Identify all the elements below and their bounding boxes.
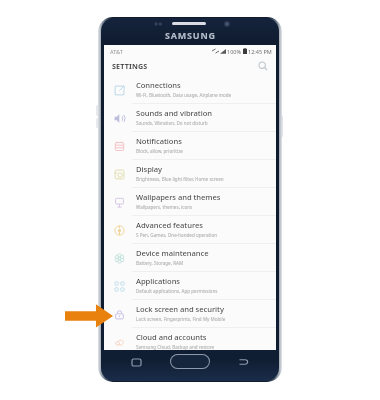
button[interactable]: Applications: [104, 272, 276, 300]
staticText: AT&T: [110, 48, 123, 55]
staticText: Display: [136, 164, 163, 174]
staticText: Default applications, App permissions: [136, 288, 218, 294]
staticText: Sounds and vibration: [136, 108, 213, 118]
button[interactable]: Recents: [129, 356, 143, 368]
button[interactable]: Display: [104, 160, 276, 188]
button[interactable]: Device maintenance: [104, 244, 276, 272]
button[interactable]: Connections: [104, 76, 276, 104]
staticText: Notifications: [136, 136, 182, 146]
button[interactable]: Notifications: [104, 132, 276, 160]
staticText: SETTINGS: [112, 61, 148, 71]
staticText: Sounds, Vibration, Do not disturb: [136, 120, 208, 126]
staticText: Wi-Fi, Bluetooth, Data usage, Airplane m…: [136, 92, 232, 98]
staticText: Cloud and accounts: [136, 332, 207, 342]
staticText: 12:45 PM: [248, 48, 272, 55]
staticText: Device maintenance: [136, 248, 209, 258]
staticText: Samsung Cloud, Backup and restore: [136, 344, 215, 350]
staticText: Brightness, Blue light filter, Home scre…: [136, 176, 224, 182]
staticText: 100%: [227, 48, 242, 55]
staticText: Lock screen, Fingerprints, Find My Mobil…: [136, 316, 226, 322]
staticText: Applications: [136, 276, 181, 286]
staticText: Block, allow, prioritize: [136, 148, 183, 154]
button[interactable]: Cloud and accounts: [104, 328, 276, 356]
staticText: Advanced features: [136, 220, 203, 230]
button[interactable]: Lock screen and security: [104, 300, 276, 328]
staticText: Wallpapers, themes, icons: [136, 204, 193, 210]
staticText: Lock screen and security: [136, 304, 224, 314]
staticText: Wallpapers and themes: [136, 192, 221, 202]
button[interactable]: Advanced features: [104, 216, 276, 244]
button[interactable]: Sounds and vibration: [104, 104, 276, 132]
staticText: Connections: [136, 80, 181, 90]
staticText: SAMSUNG: [165, 29, 216, 41]
button[interactable]: Wallpapers and themes: [104, 188, 276, 216]
staticText: S Pen, Games, One-handed operation: [136, 232, 218, 238]
button[interactable]: Search: [256, 59, 270, 73]
button[interactable]: Back: [237, 356, 251, 368]
staticText: Battery, Storage, RAM: [136, 260, 184, 266]
button[interactable]: Home: [171, 355, 209, 368]
